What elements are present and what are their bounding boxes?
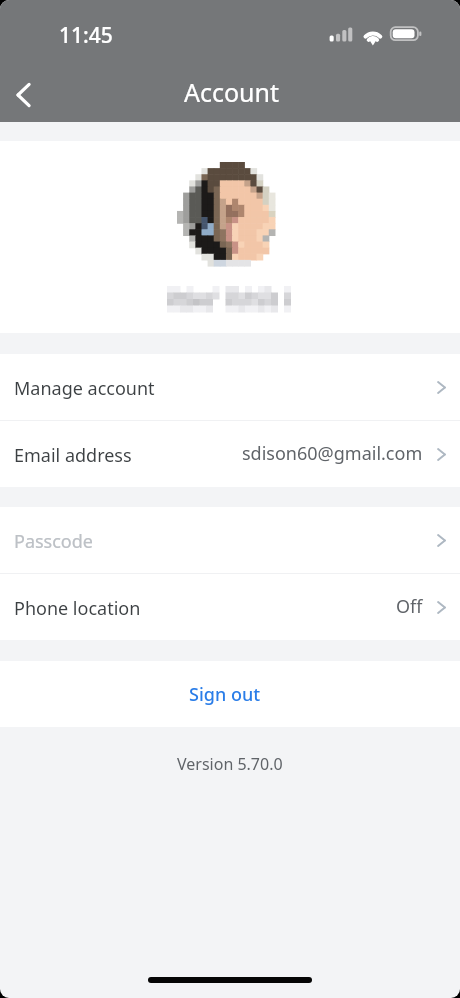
button[interactable]: Manage account xyxy=(0,354,460,420)
staticText: Off xyxy=(396,594,423,619)
staticText: Phone location xyxy=(14,596,141,621)
staticText: Sign out xyxy=(189,682,261,707)
button[interactable]: Email address xyxy=(0,421,460,487)
staticText: 11:45 xyxy=(59,21,113,50)
button[interactable]: Phone location xyxy=(0,574,460,640)
staticText: Version 5.70.0 xyxy=(177,753,283,775)
staticText: sdison60@gmail.com xyxy=(242,441,423,466)
button[interactable]: Back xyxy=(1,72,47,118)
staticText: Email address xyxy=(14,443,132,468)
button[interactable]: Passcode xyxy=(0,507,460,573)
button[interactable]: Sign out xyxy=(0,661,460,727)
staticText: Account xyxy=(184,75,280,109)
staticText: Manage account xyxy=(14,376,155,401)
staticText: Passcode xyxy=(14,529,93,554)
